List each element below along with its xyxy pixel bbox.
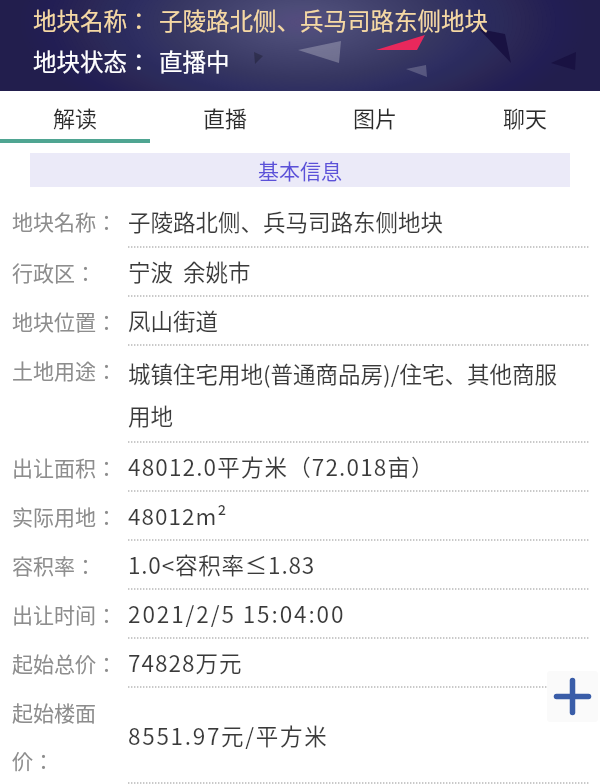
button[interactable]: Add	[547, 671, 598, 722]
staticText: 图片	[353, 101, 398, 133]
staticText: 地块位置：	[12, 306, 117, 336]
staticText: 起始楼面价：	[12, 697, 120, 775]
staticText: 实际用地：	[12, 501, 117, 531]
button[interactable]: 聊天	[450, 91, 600, 143]
button[interactable]: 出让面积：	[0, 443, 600, 490]
staticText: 直播	[203, 101, 248, 133]
staticText: 地块名称：	[12, 206, 117, 236]
staticText: 宁波 余姚市	[128, 255, 251, 288]
button[interactable]: 起始总价：	[0, 639, 600, 686]
staticText: 2021/2/5 15:04:00	[128, 597, 346, 630]
button[interactable]: 出让时间：	[0, 590, 600, 637]
staticText: 子陵路北侧、兵马司路东侧地块	[128, 205, 444, 238]
button[interactable]: 解读	[0, 91, 150, 143]
staticText: 聊天	[503, 101, 548, 133]
staticText: 74828万元	[128, 646, 243, 679]
staticText: 凤山街道	[128, 304, 219, 337]
button[interactable]: 行政区：	[0, 248, 600, 295]
staticText: 容积率：	[12, 550, 96, 580]
button[interactable]: 土地用途：	[0, 346, 600, 441]
staticText: 起始总价：	[12, 648, 117, 678]
button[interactable]: 实际用地：	[0, 492, 600, 539]
staticText: 出让面积：	[12, 452, 117, 482]
button[interactable]: 起始楼面价：	[0, 688, 600, 782]
staticText: 直播中	[159, 44, 230, 78]
button[interactable]: 地块名称：	[0, 197, 600, 246]
staticText: 48012m²	[128, 499, 228, 532]
staticText: 土地用途：	[12, 355, 117, 385]
staticText: 48012.0平方米（72.018亩）	[128, 450, 435, 483]
button[interactable]: 地块位置：	[0, 297, 600, 344]
staticText: 8551.97元/平方米	[128, 719, 329, 752]
button[interactable]: 直播	[150, 91, 300, 143]
button[interactable]: 图片	[300, 91, 450, 143]
staticText: 地块状态：	[33, 44, 151, 78]
staticText: 出让时间：	[12, 599, 117, 629]
staticText: 基本信息	[258, 155, 342, 185]
staticText: 1.0<容积率≤1.83	[128, 548, 316, 581]
staticText: 解读	[53, 101, 98, 133]
staticText: 行政区：	[12, 257, 96, 287]
staticText: 城镇住宅用地(普通商品房)/住宅、其他商服用地	[128, 357, 573, 431]
button[interactable]: 容积率：	[0, 541, 600, 588]
staticText: 地块名称：	[33, 3, 151, 37]
staticText: 子陵路北侧、兵马司路东侧地块	[159, 3, 488, 37]
